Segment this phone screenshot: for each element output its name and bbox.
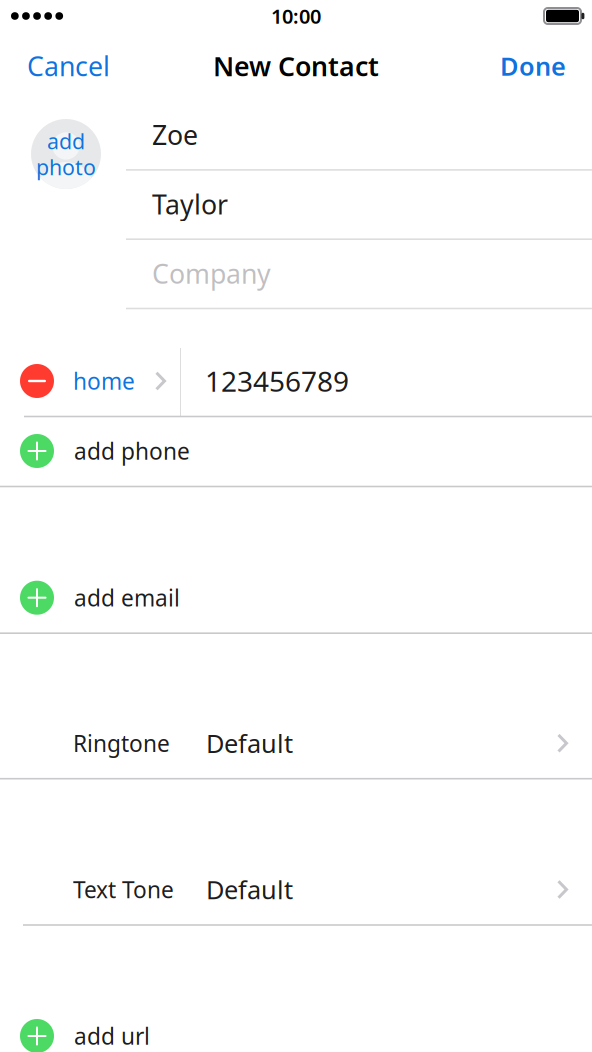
staticText: Ringtone — [73, 728, 170, 758]
staticText: Taylor — [152, 186, 228, 222]
staticText: Default — [206, 726, 293, 760]
staticText: Done — [500, 49, 566, 83]
staticText: New Contact — [213, 48, 379, 84]
button[interactable]: Cancel — [0, 38, 124, 94]
button[interactable]: add phone — [0, 416, 592, 486]
button[interactable]: 123456789 — [181, 346, 592, 416]
staticText: Zoe — [152, 117, 198, 152]
button[interactable]: Done — [486, 38, 592, 94]
staticText: 123456789 — [205, 362, 349, 400]
staticText: photo — [36, 153, 96, 181]
staticText: Default — [206, 873, 293, 906]
staticText: Company — [152, 256, 271, 291]
button[interactable]: home — [0, 346, 180, 416]
button[interactable]: Ringtone — [0, 708, 592, 778]
button[interactable]: Add photo — [31, 119, 101, 189]
staticText: Text Tone — [73, 874, 174, 904]
staticText: add url — [74, 1021, 150, 1051]
staticText: home — [73, 366, 135, 396]
staticText: add — [47, 127, 85, 155]
button[interactable]: add url — [0, 1001, 592, 1052]
button[interactable]: Text Tone — [0, 854, 592, 924]
button[interactable]: add email — [0, 563, 592, 633]
staticText: Cancel — [27, 48, 110, 84]
staticText: add email — [74, 583, 180, 613]
staticText: 10:00 — [271, 3, 321, 29]
staticText: add phone — [74, 436, 190, 466]
